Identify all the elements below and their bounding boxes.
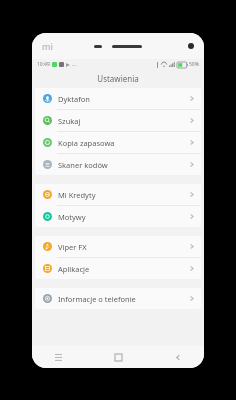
staticText: mi [42, 40, 53, 52]
staticText: Ustawienia [97, 73, 139, 84]
button[interactable]: Viper FX [35, 236, 201, 257]
staticText: 50% [189, 61, 199, 68]
button[interactable]: Informacje o telefonie [35, 288, 201, 309]
button[interactable]: Skaner kodów [35, 154, 201, 175]
button[interactable]: Home [110, 349, 126, 365]
button[interactable]: Kopia zapasowa [35, 132, 201, 153]
staticText: Skaner kodów [58, 160, 108, 170]
staticText: Aplikacje [58, 264, 90, 274]
button[interactable]: Aplikacje [35, 258, 201, 279]
staticText: Dyktafon [58, 94, 90, 104]
staticText: Szukaj [58, 116, 81, 126]
staticText: Motywy [58, 212, 86, 222]
button[interactable]: Motywy [35, 206, 201, 227]
staticText: ... [72, 61, 77, 68]
button[interactable]: Menu [50, 349, 66, 365]
staticText: Viper FX [58, 242, 87, 252]
button[interactable]: Dyktafon [35, 88, 201, 109]
button[interactable]: Szukaj [35, 110, 201, 131]
staticText: 10:49 [37, 61, 50, 68]
staticText: Mi Kredyty [58, 190, 96, 200]
button[interactable]: Back [170, 349, 186, 365]
button[interactable]: Mi Kredyty [35, 184, 201, 205]
staticText: Kopia zapasowa [58, 138, 115, 148]
staticText: Informacje o telefonie [58, 294, 136, 304]
